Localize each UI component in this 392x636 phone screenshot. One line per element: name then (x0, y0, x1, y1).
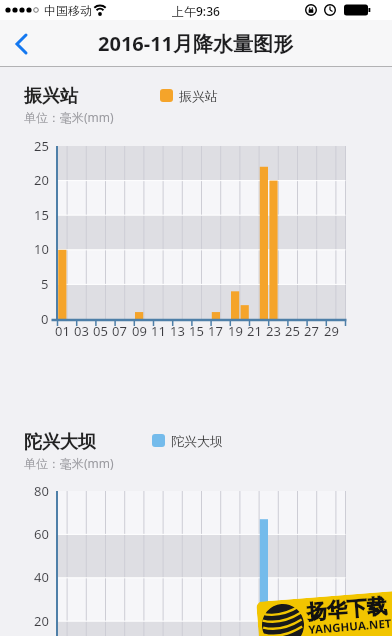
staticText: 上午9:36 (172, 3, 220, 19)
button[interactable]: 扬华下载 (256, 590, 392, 636)
staticText: 07 (112, 322, 127, 340)
staticText: 29 (324, 322, 339, 340)
staticText: 0 (41, 310, 49, 328)
staticText: 中国移动 (44, 3, 92, 18)
staticText: 单位：毫米(mm) (24, 455, 114, 471)
staticText: 陀兴大坝 (171, 433, 223, 449)
button[interactable] (4, 24, 40, 64)
staticText: 陀兴大坝 (24, 431, 96, 454)
staticText: YANGHUA.NET (308, 615, 392, 636)
staticText: 15 (189, 322, 204, 340)
staticText: 05 (93, 322, 108, 340)
staticText: 11 (151, 322, 166, 340)
staticText: 扬华下载 (306, 594, 388, 625)
staticText: 19 (228, 322, 243, 340)
staticText: 25 (285, 322, 300, 340)
staticText: 27 (304, 322, 319, 340)
staticText: 60 (34, 525, 49, 543)
staticText: 振兴站 (24, 85, 78, 108)
staticText: 17 (208, 322, 223, 340)
staticText: 5 (41, 275, 49, 293)
staticText: 单位：毫米(mm) (24, 109, 114, 125)
staticText: 21 (247, 322, 262, 340)
staticText: 20 (34, 171, 49, 189)
staticText: 振兴站 (179, 88, 218, 104)
staticText: 80 (34, 482, 49, 500)
staticText: 10 (34, 240, 49, 258)
staticText: 01 (55, 322, 70, 340)
staticText: 25 (34, 137, 49, 155)
staticText: 2016-11月降水量图形 (98, 30, 294, 57)
staticText: 40 (34, 568, 49, 586)
staticText: 13 (170, 322, 185, 340)
staticText: 15 (34, 206, 49, 224)
staticText: 03 (74, 322, 89, 340)
staticText: 20 (34, 612, 49, 630)
staticText: 09 (132, 322, 147, 340)
staticText: 23 (266, 322, 281, 340)
